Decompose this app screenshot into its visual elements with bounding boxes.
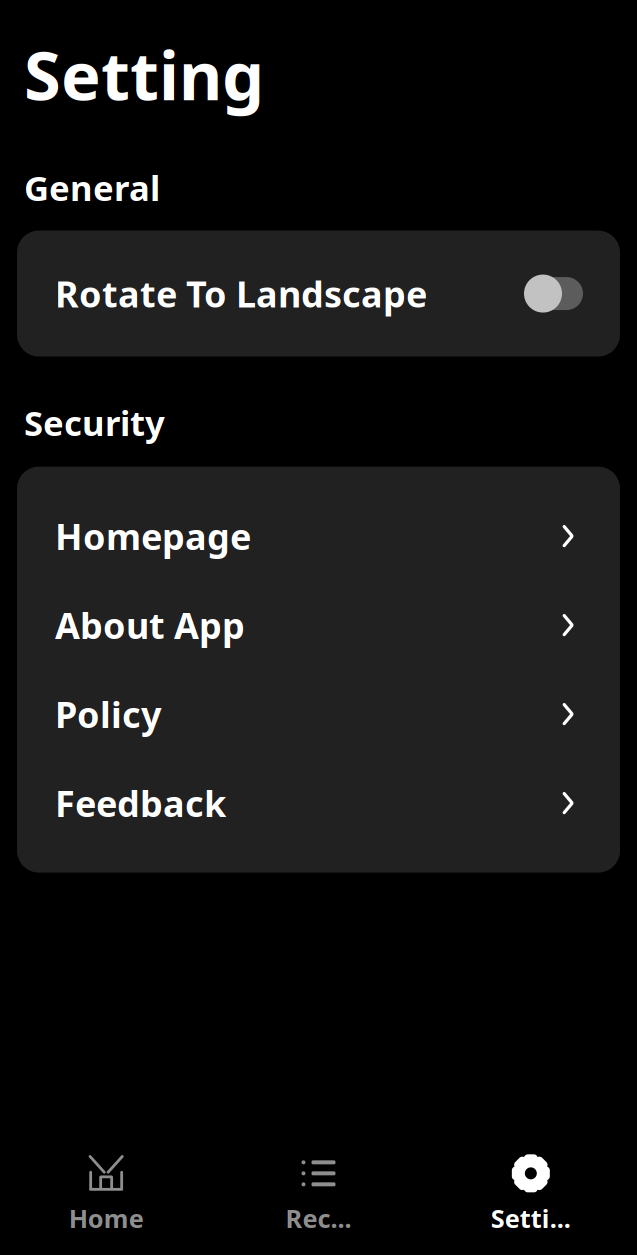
staticText: Setting xyxy=(24,30,264,118)
staticText: Security xyxy=(24,400,165,446)
button[interactable]: Homepage xyxy=(17,492,620,581)
button[interactable]: Records xyxy=(212,1147,425,1241)
staticText: General xyxy=(24,164,160,210)
button[interactable]: Settings xyxy=(425,1147,637,1241)
staticText: Rec... xyxy=(285,1201,351,1235)
staticText: Feedback xyxy=(55,779,226,827)
button[interactable]: Policy xyxy=(17,670,620,759)
button[interactable]: Home xyxy=(0,1147,212,1241)
staticText: Setti... xyxy=(491,1201,571,1235)
button[interactable]: About App xyxy=(17,581,620,670)
staticText: Home xyxy=(69,1201,144,1235)
staticText: Homepage xyxy=(55,512,251,560)
staticText: About App xyxy=(55,601,245,649)
staticText: Policy xyxy=(55,690,162,738)
button[interactable]: Rotate To Landscape xyxy=(17,231,620,357)
button[interactable]: Feedback xyxy=(17,759,620,848)
staticText: Rotate To Landscape xyxy=(55,270,427,317)
